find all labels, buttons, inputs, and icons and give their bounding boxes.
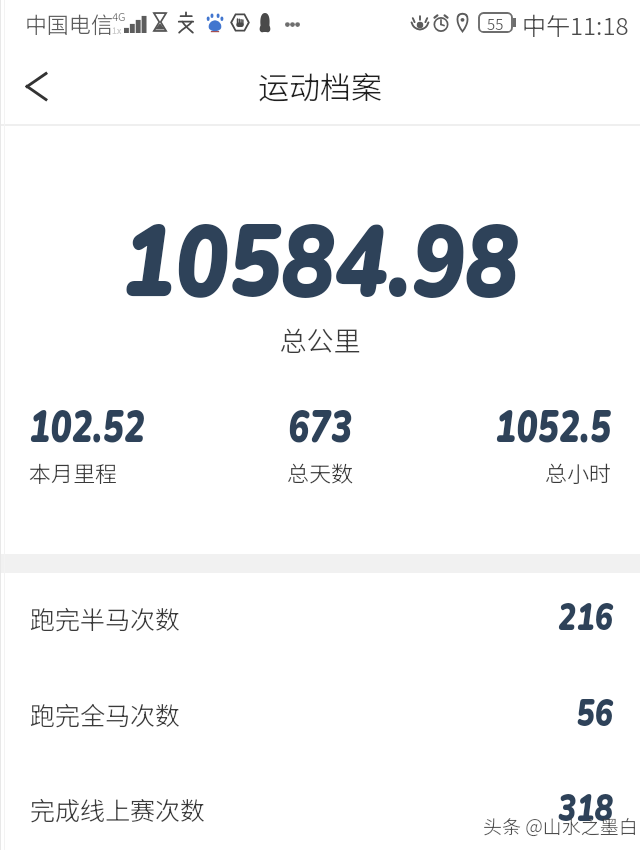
staticText: 总公里 [0,320,640,359]
staticText: 10584.98 [39,194,601,332]
staticText: 头条 @山水之墨白 [483,812,638,840]
staticText: 55 [487,13,504,32]
button[interactable]: 跑完全马次数 [0,666,640,761]
staticText: 跑完全马次数 [30,696,181,732]
staticText: 318 [557,784,613,834]
staticText: 完成线上赛次数 [30,791,206,827]
staticText: 673 [245,395,395,458]
button[interactable]: Back [8,58,64,114]
staticText: 总小时 [417,456,611,488]
staticText: 本月里程 [29,456,223,488]
button[interactable]: 跑完半马次数 [0,570,640,666]
staticText: 1x [112,24,122,37]
button[interactable]: 102.52 [29,395,223,490]
staticText: 56 [576,689,613,739]
staticText: 1052.5 [462,395,611,458]
staticText: 216 [557,593,613,643]
button[interactable]: 673 [223,395,417,490]
button[interactable]: 1052.5 [417,395,611,490]
staticText: 总天数 [223,456,417,488]
staticText: 4G [112,8,126,24]
staticText: 中午11:18 [522,7,629,37]
staticText: 跑完半马次数 [30,600,181,636]
staticText: 头条 @山水之墨白 [484,813,639,841]
button[interactable]: 完成线上赛次数 [0,761,640,850]
staticText: 102.52 [29,395,178,458]
staticText: 运动档案 [258,63,382,108]
staticText: 中国电信 [25,7,114,37]
